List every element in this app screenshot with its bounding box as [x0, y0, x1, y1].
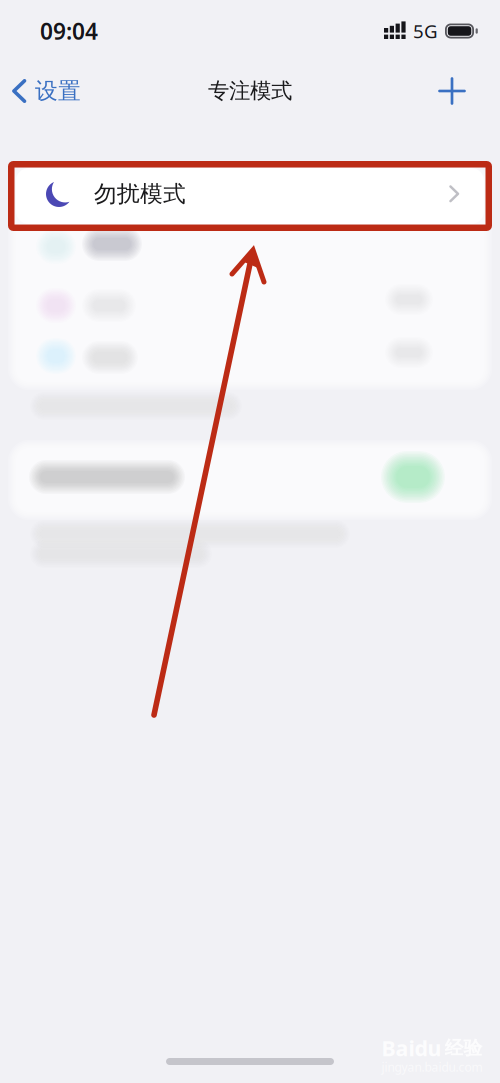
- staticText: Baidu: [381, 1034, 441, 1062]
- staticText: 专注模式: [208, 78, 292, 104]
- staticText: 经验: [444, 1036, 482, 1059]
- staticText: 5G: [413, 19, 438, 43]
- staticText: 设置: [35, 77, 81, 105]
- button[interactable]: 添加专注模式: [429, 68, 475, 114]
- button[interactable]: 设置: [0, 68, 95, 114]
- button[interactable]: 勿扰模式: [16, 168, 484, 224]
- staticText: 09:04: [40, 16, 98, 46]
- staticText: 勿扰模式: [94, 180, 186, 208]
